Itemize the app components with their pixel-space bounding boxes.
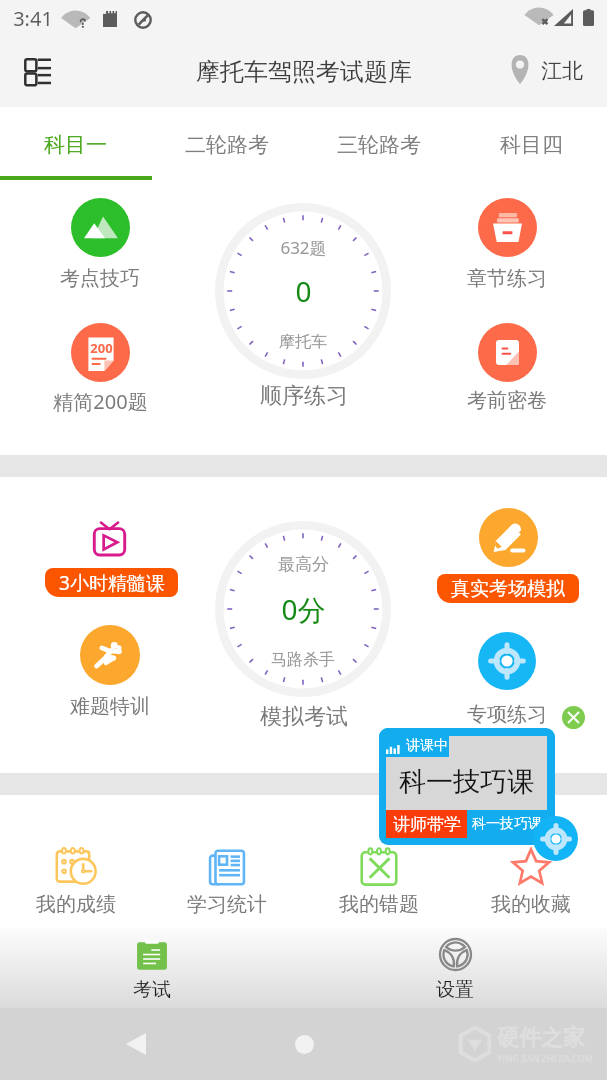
staticText: 真实考场模拟 — [451, 577, 565, 601]
button[interactable]: 学习统计 — [151, 846, 303, 917]
staticText: 设置 — [436, 978, 474, 1002]
staticText: 3小时精髓课 — [59, 570, 165, 596]
button[interactable]: 真实考场模拟 — [479, 508, 538, 567]
staticText: 江北 — [541, 58, 583, 84]
button[interactable]: 章节练习 — [427, 266, 587, 291]
button[interactable]: 科目四 — [455, 107, 607, 179]
button[interactable]: 考前密卷 — [478, 323, 537, 382]
staticText: 摩托车 — [279, 332, 327, 352]
staticText: 模拟考试 — [260, 703, 348, 731]
staticText: 章节练习 — [467, 266, 547, 291]
button[interactable]: 设置 — [303, 928, 607, 1008]
button[interactable]: 三轮路考 — [303, 107, 455, 179]
staticText: 科目四 — [500, 132, 563, 158]
button[interactable]: 我的成绩 — [0, 846, 151, 917]
staticText: 科一技巧课 — [472, 815, 542, 833]
staticText: 0分 — [281, 590, 326, 628]
staticText: 摩托车驾照考试题库 — [196, 57, 412, 87]
button[interactable]: 精简200题 — [20, 388, 180, 415]
button[interactable]: 精简200题 — [71, 323, 130, 382]
button[interactable]: 考点技巧 — [20, 266, 180, 291]
staticText: 精简200题 — [53, 388, 148, 415]
staticText: 科一技巧课 — [399, 765, 534, 799]
button[interactable]: 江北 — [509, 55, 583, 84]
button[interactable]: 专项练习 — [427, 702, 587, 727]
staticText: 讲师带学 — [393, 814, 461, 835]
staticText: 三轮路考 — [337, 132, 421, 158]
staticText: 我的成绩 — [36, 892, 116, 917]
staticText: 最高分 — [278, 554, 329, 575]
staticText: 讲课中 — [406, 737, 448, 755]
button[interactable]: 章节练习 — [478, 198, 537, 257]
button[interactable]: 二轮路考 — [151, 107, 303, 179]
button[interactable]: Menu — [18, 52, 56, 90]
button[interactable]: Close — [562, 706, 585, 729]
button[interactable]: 难题特训 — [80, 625, 140, 685]
button[interactable]: 最高分 — [215, 521, 391, 697]
staticText: 科目一 — [44, 132, 107, 158]
button[interactable]: 考点技巧 — [71, 198, 130, 257]
button[interactable]: 真实考场模拟 — [437, 574, 579, 603]
button[interactable]: 3小时精髓课 — [45, 568, 178, 597]
button[interactable]: 专项练习 — [533, 816, 578, 861]
staticText: 0 — [295, 272, 312, 310]
staticText: 难题特训 — [70, 694, 150, 719]
staticText: 顺序练习 — [260, 382, 348, 410]
button[interactable]: 我的收藏 — [455, 846, 607, 917]
staticText: 马路杀手 — [271, 650, 335, 670]
staticText: 硬件之家 — [497, 1024, 585, 1052]
staticText: 200 — [90, 339, 113, 357]
staticText: 考前密卷 — [467, 388, 547, 413]
button[interactable]: 难题特训 — [30, 694, 190, 719]
staticText: 我的收藏 — [491, 892, 571, 917]
staticText: 考试 — [133, 978, 171, 1002]
button[interactable]: 科一技巧课 直播 — [379, 728, 555, 845]
staticText: 632题 — [280, 236, 327, 259]
staticText: 考点技巧 — [60, 266, 140, 291]
staticText: 我的错题 — [339, 892, 419, 917]
staticText: YING JIAN ZHI JIA.COM — [497, 1052, 593, 1064]
button[interactable]: 专项练习 — [478, 632, 536, 690]
staticText: 3:41 — [13, 5, 53, 32]
button[interactable]: Back — [118, 1008, 154, 1080]
staticText: 专项练习 — [467, 702, 547, 727]
button[interactable]: 632题 — [215, 203, 391, 379]
button[interactable]: 3小时精髓课 — [90, 517, 129, 557]
button[interactable]: Home — [286, 1008, 322, 1080]
button[interactable]: 考试 — [0, 928, 303, 1008]
button[interactable]: 科目一 — [0, 107, 151, 179]
button[interactable]: 考前密卷 — [427, 388, 587, 413]
button[interactable]: 我的错题 — [303, 846, 455, 917]
staticText: 学习统计 — [187, 892, 267, 917]
staticText: 二轮路考 — [185, 132, 269, 158]
